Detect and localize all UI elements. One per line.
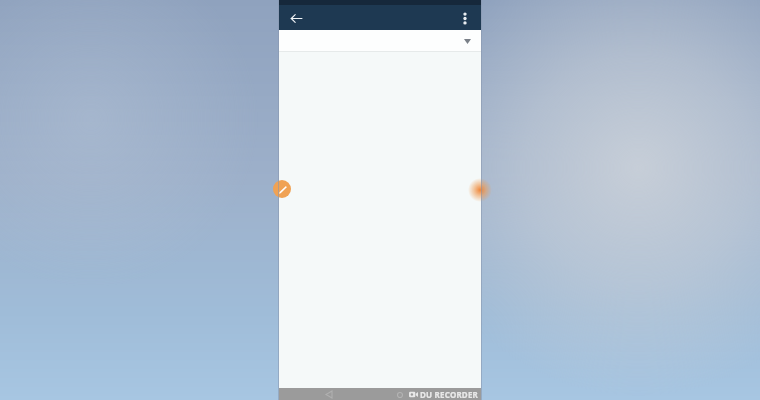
button[interactable]: Edit <box>273 180 291 198</box>
button[interactable]: Home <box>394 389 405 400</box>
button[interactable]: Back <box>285 7 307 29</box>
staticText: DU RECORDER <box>420 389 479 400</box>
button[interactable]: More options <box>454 7 476 29</box>
button[interactable]: Back <box>323 389 334 400</box>
button[interactable]: Select option <box>279 30 481 52</box>
other: Touch indicator <box>468 178 492 202</box>
